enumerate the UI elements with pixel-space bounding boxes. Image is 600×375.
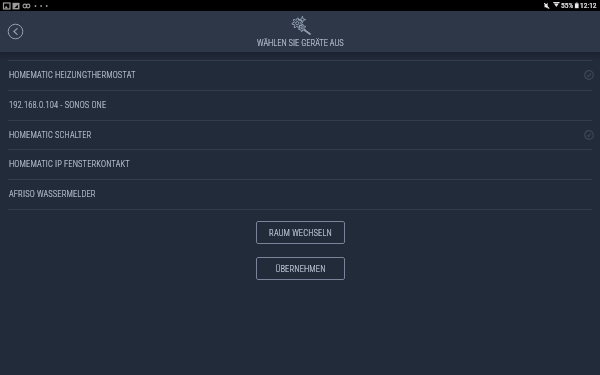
staticText: RAUM WECHSELN [269,228,332,238]
staticText: HOMEMATIC HEIZUNGTHERMOSTAT [9,70,136,80]
staticText: WÄHLEN SIE GERÄTE AUS [257,38,344,48]
staticText: AFRISO WASSERMELDER [9,189,96,199]
button[interactable]: Back [7,23,24,40]
staticText: 55% [561,1,574,10]
staticText: ÜBERNEHMEN [275,264,326,274]
button[interactable]: HOMEMATIC HEIZUNGTHERMOSTAT [0,60,600,90]
other: Device options [584,130,594,140]
staticText: 12:12 [580,1,597,10]
button[interactable]: RAUM WECHSELN [256,221,345,244]
other: Device options [584,70,594,80]
button[interactable]: HOMEMATIC IP FENSTERKONTAKT [0,149,600,179]
button[interactable]: AFRISO WASSERMELDER [0,179,600,209]
button[interactable]: ÜBERNEHMEN [256,257,345,280]
staticText: 192.168.0.104 - SONOS ONE [9,100,107,110]
staticText: HOMEMATIC SCHALTER [9,130,92,140]
staticText: HOMEMATIC IP FENSTERKONTAKT [9,159,130,169]
button[interactable]: HOMEMATIC SCHALTER [0,120,600,150]
button[interactable]: 192.168.0.104 - SONOS ONE [0,90,600,120]
